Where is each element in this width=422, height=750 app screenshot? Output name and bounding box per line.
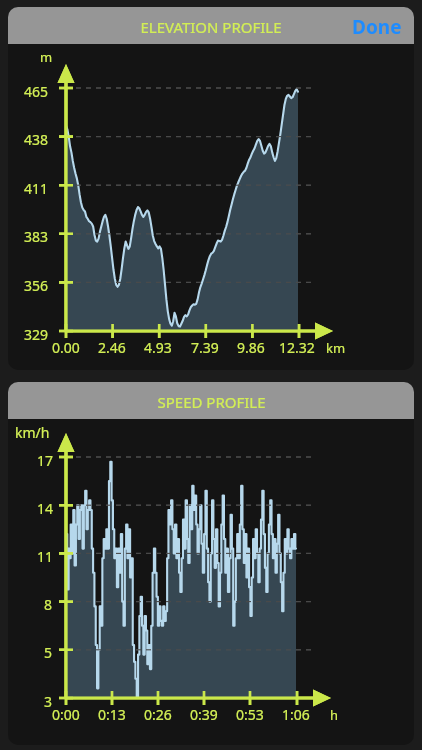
staticText: 3	[44, 692, 53, 711]
staticText: 0:00	[52, 705, 80, 724]
staticText: 438	[24, 130, 49, 149]
staticText: 14	[37, 499, 54, 518]
staticText: ELEVATION PROFILE	[140, 17, 282, 37]
staticText: 0.00	[52, 338, 80, 357]
staticText: 329	[24, 325, 49, 344]
staticText: 411	[24, 179, 49, 198]
staticText: Done	[352, 14, 402, 37]
staticText: 0:13	[98, 705, 126, 724]
staticText: 9.86	[237, 338, 265, 357]
staticText: SPEED PROFILE	[157, 392, 266, 412]
staticText: km/h	[15, 423, 50, 442]
staticText: 5	[44, 643, 53, 662]
staticText: 356	[24, 276, 49, 295]
staticText: m	[40, 48, 53, 66]
staticText: 0:26	[144, 705, 172, 724]
staticText: h	[330, 706, 339, 724]
staticText: 465	[24, 82, 49, 101]
staticText: 8	[44, 595, 53, 614]
staticText: 4.93	[144, 338, 172, 357]
staticText: 0:39	[190, 705, 218, 724]
staticText: km	[326, 339, 346, 357]
staticText: 2.46	[98, 338, 126, 357]
staticText: 17	[37, 451, 54, 470]
staticText: 383	[24, 227, 49, 246]
staticText: 12.32	[279, 338, 315, 357]
staticText: 1:06	[282, 705, 310, 724]
staticText: 7.39	[191, 338, 219, 357]
button[interactable]: Done	[340, 7, 414, 44]
staticText: 0:53	[236, 705, 264, 724]
staticText: 11	[37, 547, 54, 566]
